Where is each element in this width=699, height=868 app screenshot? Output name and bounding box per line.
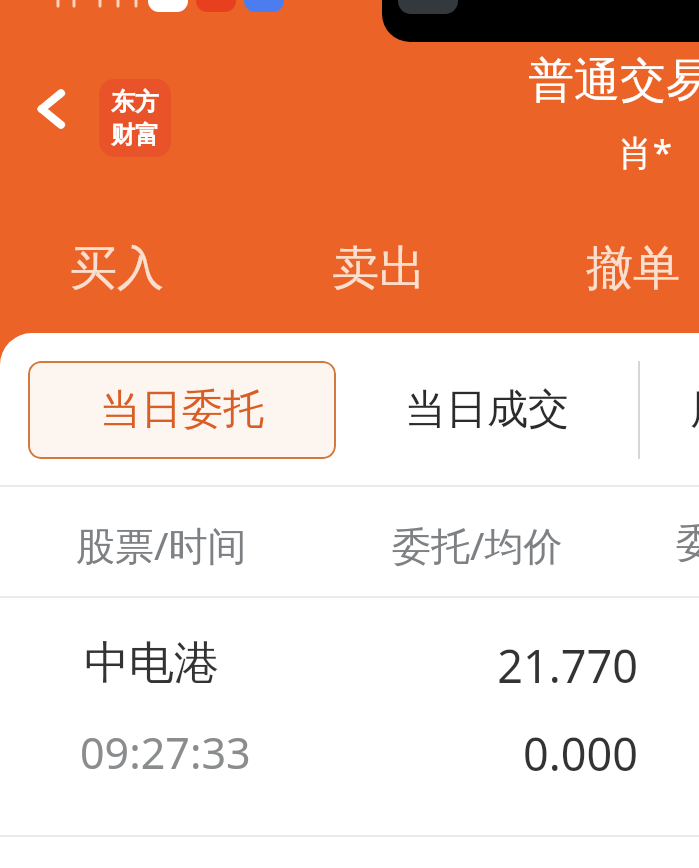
button[interactable]: 卖出 bbox=[332, 222, 482, 314]
staticText: 股票/时间 bbox=[76, 518, 247, 571]
button[interactable]: 当日成交 bbox=[336, 361, 638, 459]
staticText: 21.770 bbox=[300, 635, 638, 696]
staticText: 财富 bbox=[111, 120, 159, 150]
staticText: 当日委托 bbox=[100, 384, 264, 436]
staticText: 0.000 bbox=[300, 723, 638, 784]
staticText: 肖* bbox=[520, 128, 672, 176]
button[interactable]: 中电港 bbox=[0, 597, 699, 835]
staticText: 撤单 bbox=[586, 239, 680, 298]
button[interactable]: 当日委托 bbox=[28, 361, 336, 459]
button[interactable]: 买入 bbox=[70, 222, 220, 314]
staticText: 卖出 bbox=[332, 239, 426, 298]
staticText: 委托/均价 bbox=[392, 518, 563, 571]
staticText: 当日成交 bbox=[405, 384, 569, 436]
staticText: 东方 bbox=[111, 87, 159, 117]
button[interactable]: More tabs bbox=[690, 361, 699, 459]
staticText: 中电港 bbox=[84, 635, 219, 692]
staticText: 历 bbox=[690, 384, 699, 436]
button[interactable]: 撤单 bbox=[586, 222, 699, 314]
staticText: 委托 bbox=[676, 518, 699, 567]
staticText: 买入 bbox=[70, 239, 164, 298]
button[interactable]: Back bbox=[18, 76, 84, 142]
staticText: 09:27:33 bbox=[80, 723, 251, 782]
staticText: 普通交易 bbox=[528, 52, 699, 110]
button[interactable]: East Money bbox=[99, 79, 171, 157]
